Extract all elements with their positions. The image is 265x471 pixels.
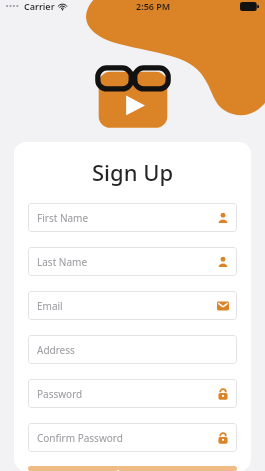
staticText: 2:56 PM — [136, 0, 171, 12]
button[interactable]: Confirm Password — [28, 423, 237, 452]
staticText: Carrier — [24, 0, 55, 12]
staticText: First Name — [37, 211, 217, 225]
staticText: Sign Up — [109, 466, 157, 471]
other: App logo — [86, 62, 180, 132]
button[interactable]: Last Name — [28, 247, 237, 276]
staticText: Address — [37, 343, 229, 357]
staticText: Sign Up — [28, 157, 237, 187]
button[interactable]: Sign Up — [28, 466, 237, 471]
button[interactable]: Address — [28, 335, 237, 364]
staticText: Last Name — [37, 255, 217, 269]
staticText: Password — [37, 387, 217, 401]
button[interactable]: Email — [28, 291, 237, 320]
button[interactable]: First Name — [28, 203, 237, 232]
staticText: Email — [37, 299, 217, 313]
button[interactable]: Password — [28, 379, 237, 408]
staticText: Confirm Password — [37, 431, 217, 445]
